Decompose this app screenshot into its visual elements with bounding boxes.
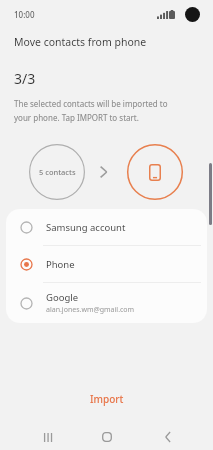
- staticText: Samsung account: [46, 221, 126, 234]
- staticText: Import: [90, 392, 124, 406]
- button[interactable]: Google: [6, 283, 207, 323]
- button[interactable]: Recent apps: [38, 427, 58, 447]
- staticText: Move contacts from phone: [14, 35, 147, 49]
- staticText: your phone. Tap IMPORT to start.: [14, 112, 139, 123]
- staticText: The selected contacts will be imported t…: [14, 98, 168, 109]
- staticText: 5 contacts: [39, 167, 76, 177]
- button[interactable]: Phone: [6, 246, 207, 282]
- staticText: alan.jones.wm@gmail.com: [46, 305, 135, 315]
- staticText: Google: [46, 291, 79, 304]
- staticText: 10:00: [14, 9, 35, 20]
- button[interactable]: Back: [158, 427, 178, 447]
- button[interactable]: Home: [96, 426, 118, 448]
- button[interactable]: Samsung account: [6, 209, 207, 245]
- button[interactable]: Import: [0, 382, 213, 416]
- staticText: 3/3: [14, 69, 36, 88]
- staticText: Phone: [46, 258, 75, 271]
